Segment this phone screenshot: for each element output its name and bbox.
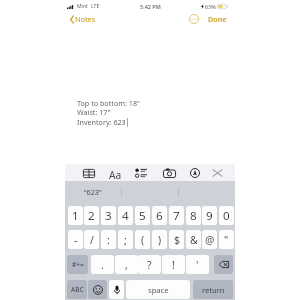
staticText: ' — [196, 258, 199, 272]
button[interactable]: 6 — [152, 206, 167, 225]
button[interactable]: & — [186, 230, 201, 249]
staticText: & — [190, 233, 198, 247]
button[interactable]: / — [84, 230, 99, 249]
staticText: , — [125, 258, 128, 272]
button[interactable]: " — [219, 230, 234, 249]
staticText: 3 — [105, 208, 112, 224]
button[interactable]: Table — [81, 165, 97, 181]
staticText: ? — [147, 258, 152, 272]
button[interactable]: 0 — [219, 206, 234, 225]
staticText: 5 — [139, 208, 146, 224]
button[interactable]: ! — [162, 255, 185, 274]
staticText: Inventory: 623 — [77, 117, 126, 127]
staticText: Mint — [77, 3, 88, 10]
button[interactable]: More options — [189, 14, 199, 24]
staticText: 0 — [223, 208, 230, 224]
staticText: Aa — [109, 168, 122, 182]
button[interactable]: ( — [135, 230, 150, 249]
staticText: 6 — [156, 208, 163, 224]
button[interactable]: Done — [208, 14, 227, 24]
button[interactable]: ; — [118, 230, 133, 249]
button[interactable]: Emoji — [88, 280, 107, 299]
button[interactable]: Camera — [161, 165, 177, 181]
button[interactable]: : — [101, 230, 116, 249]
staticText: $ — [174, 233, 180, 247]
button[interactable]: 3 — [101, 206, 116, 225]
staticText: : — [107, 233, 110, 247]
button[interactable]: Notes — [66, 12, 100, 27]
staticText: 9 — [206, 208, 213, 224]
button[interactable]: , — [115, 255, 138, 274]
button[interactable]: 2 — [84, 206, 99, 225]
button[interactable]: Checklist — [133, 165, 149, 181]
button[interactable]: 9 — [202, 206, 217, 225]
button[interactable]: ) — [152, 230, 167, 249]
staticText: LTE — [91, 3, 100, 10]
staticText: space — [148, 285, 169, 295]
button[interactable]: Close — [209, 165, 225, 181]
staticText: Done — [208, 14, 227, 24]
button[interactable]: - — [68, 230, 83, 249]
button[interactable]: ABC — [67, 280, 87, 299]
staticText: @ — [205, 233, 215, 247]
staticText: Waist: 17" — [77, 107, 111, 117]
staticText: #+= — [72, 260, 84, 269]
staticText: ) — [158, 233, 162, 247]
button[interactable]: Format — [109, 168, 122, 182]
button[interactable]: Backspace — [214, 255, 233, 274]
staticText: 63% — [205, 3, 216, 10]
button[interactable]: 8 — [186, 206, 201, 225]
staticText: / — [90, 233, 94, 247]
staticText: 1 — [72, 208, 79, 224]
staticText: Notes — [75, 14, 96, 24]
button[interactable]: “623” — [65, 181, 121, 203]
button[interactable]: Markup — [187, 165, 203, 181]
staticText: return — [202, 285, 225, 295]
button[interactable]: 5 — [135, 206, 150, 225]
button[interactable]: #+= — [67, 255, 88, 274]
button[interactable]: $ — [169, 230, 184, 249]
staticText: ; — [124, 233, 127, 247]
staticText: Top to bottom: 18" — [77, 98, 140, 108]
staticText: . — [101, 258, 104, 272]
button[interactable]: return — [193, 280, 233, 299]
button[interactable]: 7 — [169, 206, 184, 225]
button[interactable]: space — [126, 280, 190, 299]
staticText: 8 — [190, 208, 197, 224]
staticText: " — [224, 233, 229, 247]
button[interactable]: @ — [202, 230, 217, 249]
staticText: 4 — [122, 208, 129, 224]
staticText: ABC — [71, 285, 84, 294]
button[interactable]: ? — [138, 255, 161, 274]
button[interactable]: . — [91, 255, 114, 274]
staticText: 2 — [88, 208, 95, 224]
staticText: ! — [172, 258, 175, 272]
staticText: 7 — [173, 208, 180, 224]
staticText: “623” — [84, 187, 102, 197]
button[interactable]: Dictation — [109, 280, 124, 299]
staticText: - — [74, 233, 78, 247]
staticText: ( — [141, 233, 145, 247]
staticText: 5:42 PM — [140, 3, 161, 10]
button[interactable]: 1 — [68, 206, 83, 225]
button[interactable]: 4 — [118, 206, 133, 225]
button[interactable]: ' — [186, 255, 209, 274]
